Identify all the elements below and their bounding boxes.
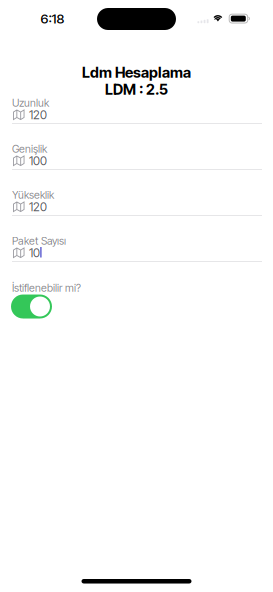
staticText: 120 [29, 107, 47, 122]
staticText: Uzunluk [12, 96, 49, 109]
staticText: 10 [29, 245, 40, 260]
button[interactable]: Uzunluk [0, 0, 273, 48]
staticText: 6:18 [40, 10, 64, 27]
button[interactable]: Genişlik [0, 0, 273, 48]
staticText: Genişlik [12, 142, 47, 155]
staticText: Yükseklik [12, 188, 54, 201]
staticText: 120 [29, 199, 47, 214]
staticText: 100 [29, 153, 47, 168]
button[interactable]: İstiflenebilir mi? [11, 294, 52, 318]
staticText: Paket Sayısı [12, 234, 66, 247]
staticText: İstiflenebilir mi? [12, 281, 81, 294]
button[interactable]: Yükseklik [0, 0, 273, 48]
staticText: Ldm Hesaplama [82, 63, 191, 81]
button[interactable]: Paket Sayısı [0, 0, 273, 48]
staticText: LDM : 2.5 [105, 80, 168, 98]
